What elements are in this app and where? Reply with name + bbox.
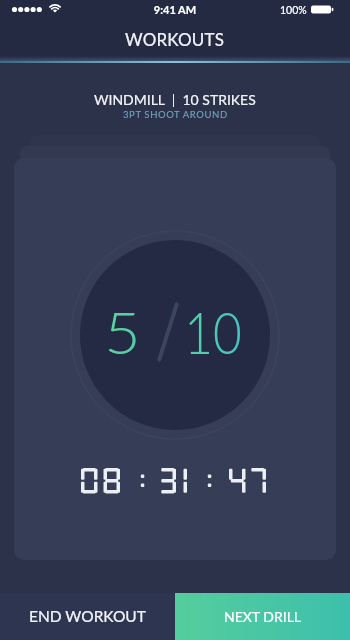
staticText: 5 [104, 298, 142, 366]
staticText: WINDMILL | 10 STRIKES [94, 91, 256, 108]
staticText: 3PT SHOOT AROUND [123, 109, 228, 120]
staticText: 9:41 AM [0, 3, 350, 16]
staticText: 100% [280, 4, 307, 17]
staticText: END WORKOUT [29, 607, 146, 626]
button[interactable]: END WORKOUT [0, 593, 175, 640]
button[interactable]: WORKOUTS [0, 19, 350, 59]
staticText: 10 [184, 298, 243, 366]
button[interactable]: NEXT DRILL [175, 593, 350, 640]
staticText: NEXT DRILL [224, 608, 302, 625]
button[interactable]: 5 [14, 158, 336, 560]
staticText: WORKOUTS [125, 29, 225, 49]
